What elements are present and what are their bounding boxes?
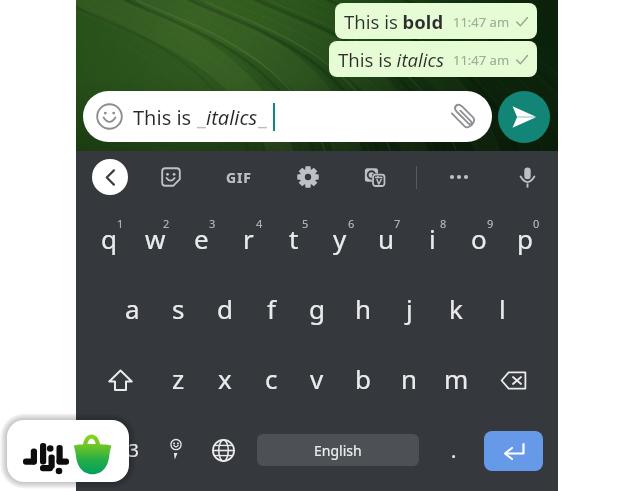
- button[interactable]: Enter: [484, 431, 543, 471]
- staticText: b: [355, 361, 371, 396]
- staticText: ?123: [100, 438, 139, 463]
- button[interactable]: Backspace: [479, 345, 548, 415]
- button[interactable]: r: [225, 205, 271, 275]
- button[interactable]: u: [363, 205, 409, 275]
- button[interactable]: More options: [441, 159, 477, 195]
- staticText: 8: [440, 216, 447, 231]
- button[interactable]: y: [317, 205, 363, 275]
- button[interactable]: n: [386, 345, 432, 415]
- button[interactable]: Comma and emoji: [153, 415, 199, 485]
- button[interactable]: s: [155, 275, 201, 345]
- button[interactable]: h: [340, 275, 386, 345]
- button[interactable]: t: [271, 205, 317, 275]
- other: Attach: [448, 101, 480, 133]
- staticText: d: [217, 291, 233, 326]
- button[interactable]: b: [340, 345, 386, 415]
- button[interactable]: f: [248, 275, 294, 345]
- staticText: m: [444, 361, 469, 396]
- button[interactable]: .: [431, 415, 477, 485]
- button[interactable]: Back: [92, 159, 128, 195]
- staticText: h: [355, 291, 372, 326]
- staticText: q: [101, 221, 117, 256]
- button[interactable]: This is italics: [329, 41, 537, 77]
- button[interactable]: l: [479, 275, 525, 345]
- staticText: 3: [209, 216, 216, 231]
- staticText: v: [310, 361, 324, 396]
- button[interactable]: c: [248, 345, 294, 415]
- button[interactable]: w: [132, 205, 178, 275]
- staticText: This is bold: [344, 9, 444, 34]
- button[interactable]: Voice input: [509, 159, 545, 195]
- button[interactable]: English: [257, 434, 419, 466]
- staticText: u: [378, 221, 395, 256]
- staticText: i: [429, 221, 436, 256]
- staticText: a: [125, 291, 140, 326]
- button[interactable]: This is: [83, 91, 492, 142]
- button[interactable]: Bazaar: [7, 420, 129, 482]
- button[interactable]: g: [294, 275, 340, 345]
- button[interactable]: Translate: [357, 159, 393, 195]
- button[interactable]: v: [294, 345, 340, 415]
- staticText: 9: [487, 216, 494, 231]
- staticText: w: [145, 221, 166, 256]
- staticText: 4: [256, 216, 263, 231]
- button[interactable]: Settings: [290, 159, 326, 195]
- staticText: 6: [348, 216, 355, 231]
- staticText: _: [258, 104, 267, 131]
- button[interactable]: Stickers: [153, 159, 189, 195]
- staticText: 1: [117, 216, 124, 231]
- staticText: English: [314, 441, 362, 460]
- button[interactable]: i: [409, 205, 455, 275]
- button[interactable]: o: [456, 205, 502, 275]
- button[interactable]: Send: [498, 91, 550, 143]
- staticText: l: [499, 291, 506, 326]
- button[interactable]: x: [202, 345, 248, 415]
- button[interactable]: q: [86, 205, 132, 275]
- button[interactable]: a: [109, 275, 155, 345]
- staticText: 7: [394, 216, 401, 231]
- button[interactable]: Shift: [86, 345, 155, 415]
- button[interactable]: k: [433, 275, 479, 345]
- staticText: n: [401, 361, 418, 396]
- button[interactable]: GIF: [221, 159, 257, 195]
- staticText: This is: [133, 104, 197, 131]
- staticText: italics: [206, 104, 258, 131]
- button[interactable]: p: [502, 205, 548, 275]
- staticText: 5: [302, 216, 309, 231]
- button[interactable]: m: [433, 345, 479, 415]
- staticText: o: [471, 221, 487, 256]
- button[interactable]: Change language: [200, 415, 246, 485]
- staticText: 0: [533, 216, 540, 231]
- staticText: .: [451, 437, 457, 464]
- button[interactable]: e: [178, 205, 224, 275]
- staticText: GIF: [226, 168, 252, 187]
- staticText: 11:47 am: [453, 51, 510, 69]
- staticText: k: [449, 291, 463, 326]
- staticText: _: [197, 104, 206, 131]
- staticText: s: [172, 291, 185, 326]
- button[interactable]: j: [386, 275, 432, 345]
- button[interactable]: This is bold: [335, 3, 537, 39]
- button[interactable]: z: [155, 345, 201, 415]
- staticText: g: [309, 291, 325, 326]
- staticText: j: [406, 291, 413, 326]
- staticText: y: [333, 221, 347, 256]
- staticText: f: [267, 291, 276, 326]
- staticText: z: [172, 361, 185, 396]
- staticText: r: [243, 221, 254, 256]
- staticText: This is italics: [338, 47, 444, 72]
- staticText: p: [517, 221, 533, 256]
- staticText: e: [194, 221, 209, 256]
- staticText: 11:47 am: [453, 13, 510, 31]
- staticText: t: [289, 221, 299, 256]
- button[interactable]: d: [202, 275, 248, 345]
- staticText: c: [265, 361, 278, 396]
- staticText: 2: [163, 216, 170, 231]
- button[interactable]: ?123: [86, 415, 153, 485]
- staticText: x: [218, 361, 232, 396]
